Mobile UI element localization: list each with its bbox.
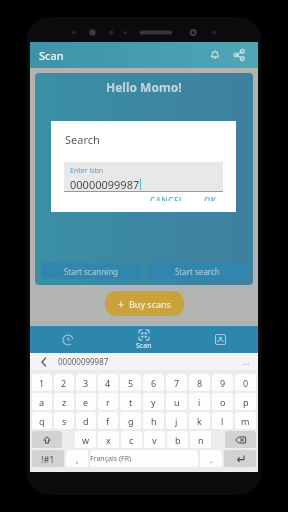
staticText: 0: [243, 377, 249, 389]
button[interactable]: Scan: [106, 326, 182, 353]
button[interactable]: Français (FR): [90, 450, 198, 467]
staticText: l: [221, 415, 224, 427]
staticText: 4: [105, 377, 111, 389]
staticText: c: [129, 434, 134, 446]
button[interactable]: 4: [98, 374, 118, 391]
staticText: Start search: [175, 266, 220, 277]
staticText: k: [197, 415, 202, 427]
button[interactable]: ,: [66, 450, 88, 467]
staticText: Buy scans: [129, 298, 171, 310]
staticText: Search: [65, 132, 100, 147]
button[interactable]: 9: [212, 374, 233, 391]
button[interactable]: f: [98, 412, 118, 429]
button[interactable]: 6: [143, 374, 164, 391]
button[interactable]: r: [98, 393, 118, 410]
button[interactable]: p: [235, 393, 256, 410]
staticText: 6: [151, 377, 157, 389]
staticText: 7: [174, 377, 180, 389]
button[interactable]: Share: [229, 45, 249, 65]
button[interactable]: 8: [189, 374, 210, 391]
button[interactable]: Back: [38, 356, 50, 368]
button[interactable]: Enter isbn: [64, 162, 223, 192]
button[interactable]: 5: [120, 374, 141, 391]
button[interactable]: i: [189, 393, 210, 410]
staticText: j: [175, 415, 178, 427]
staticText: z: [62, 396, 67, 408]
button[interactable]: Shift: [32, 431, 62, 448]
staticText: Start scanning: [64, 266, 119, 277]
button[interactable]: c: [121, 431, 142, 448]
staticText: 9: [220, 377, 226, 389]
staticText: v: [152, 434, 157, 446]
button[interactable]: b: [167, 431, 188, 448]
staticText: s: [62, 415, 67, 427]
button[interactable]: Start search: [147, 263, 247, 279]
button[interactable]: OK: [199, 192, 222, 204]
button[interactable]: t: [120, 393, 141, 410]
button[interactable]: Notifications: [205, 45, 225, 65]
staticText: 00000099987: [70, 177, 140, 192]
staticText: OK: [204, 195, 217, 201]
staticText: w: [82, 434, 90, 446]
button[interactable]: w: [75, 431, 96, 448]
button[interactable]: !#1: [32, 450, 64, 467]
staticText: u: [174, 396, 180, 408]
staticText: 8: [197, 377, 203, 389]
button[interactable]: .: [200, 450, 222, 467]
staticText: 00000099987: [58, 356, 109, 367]
button[interactable]: o: [212, 393, 233, 410]
button[interactable]: e: [76, 393, 96, 410]
staticText: 3: [83, 377, 89, 389]
button[interactable]: j: [166, 412, 187, 429]
staticText: CANCEL: [150, 195, 184, 201]
button[interactable]: CANCEL: [145, 192, 189, 204]
button[interactable]: Enter: [224, 450, 256, 467]
button[interactable]: Start scanning: [41, 263, 141, 279]
staticText: q: [39, 415, 45, 427]
staticText: e: [83, 396, 89, 408]
staticText: p: [243, 396, 249, 408]
button[interactable]: u: [166, 393, 187, 410]
staticText: Scan: [39, 48, 64, 63]
button[interactable]: 0: [235, 374, 256, 391]
staticText: g: [128, 415, 134, 427]
staticText: o: [220, 396, 226, 408]
button[interactable]: Backspace: [225, 431, 256, 448]
button[interactable]: k: [189, 412, 210, 429]
button[interactable]: a: [32, 393, 52, 410]
staticText: a: [39, 396, 45, 408]
staticText: 5: [128, 377, 134, 389]
staticText: Scan: [136, 341, 152, 351]
button[interactable]: n: [190, 431, 211, 448]
staticText: Hello Momo!: [106, 79, 182, 95]
button[interactable]: s: [54, 412, 74, 429]
staticText: t: [129, 396, 133, 408]
button[interactable]: 7: [166, 374, 187, 391]
staticText: .: [210, 453, 213, 465]
button[interactable]: x: [98, 431, 119, 448]
button[interactable]: z: [54, 393, 74, 410]
staticText: !#1: [41, 453, 55, 465]
staticText: b: [175, 434, 181, 446]
staticText: i: [198, 396, 201, 408]
button[interactable]: g: [120, 412, 141, 429]
button[interactable]: v: [144, 431, 165, 448]
button[interactable]: y: [143, 393, 164, 410]
staticText: 1: [39, 377, 45, 389]
staticText: +: [118, 296, 125, 311]
button[interactable]: 3: [76, 374, 96, 391]
button[interactable]: h: [143, 412, 164, 429]
button[interactable]: +: [105, 291, 184, 316]
button[interactable]: d: [76, 412, 96, 429]
staticText: x: [106, 434, 111, 446]
staticText: d: [83, 415, 89, 427]
button[interactable]: l: [212, 412, 233, 429]
staticText: r: [106, 396, 110, 408]
button[interactable]: q: [32, 412, 52, 429]
button[interactable]: 2: [54, 374, 74, 391]
button[interactable]: m: [235, 412, 256, 429]
button[interactable]: Profile: [182, 326, 258, 353]
button[interactable]: History: [30, 326, 106, 353]
staticText: Enter isbn: [70, 166, 104, 176]
button[interactable]: 1: [32, 374, 52, 391]
